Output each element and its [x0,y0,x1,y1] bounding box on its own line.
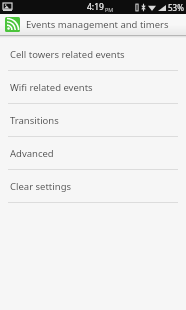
staticText: 53% [168,2,184,13]
button[interactable]: Transitions [0,104,186,136]
staticText: Events management and timers [26,18,169,31]
staticText: 4:19 [87,1,104,13]
staticText: Cell towers related events [10,48,125,61]
staticText: Clear settings [10,180,72,193]
button[interactable]: Cell towers related events [0,38,186,70]
other: App icon [5,17,20,32]
staticText: Wifi related events [10,81,93,94]
staticText: PM [105,6,114,13]
button[interactable]: Clear settings [0,170,186,202]
button[interactable]: Advanced [0,137,186,169]
staticText: Transitions [10,114,59,127]
staticText: Advanced [10,147,54,160]
button[interactable]: Wifi related events [0,71,186,103]
